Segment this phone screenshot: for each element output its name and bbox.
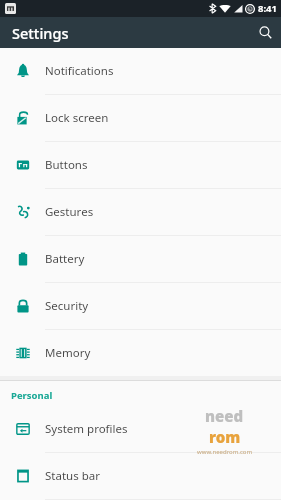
staticText: Lock screen	[45, 110, 109, 126]
staticText: Gestures	[45, 204, 94, 220]
staticText: www.needrom.com	[197, 448, 253, 456]
staticText: Settings	[12, 23, 69, 43]
staticText: Status bar	[45, 468, 100, 484]
staticText: Security	[45, 298, 89, 314]
staticText: Personal	[11, 389, 53, 402]
button[interactable]: Status bar	[0, 453, 281, 499]
button[interactable]: System profiles	[0, 406, 281, 452]
button[interactable]: Battery	[0, 236, 281, 282]
button[interactable]: Memory	[0, 330, 281, 376]
staticText: 8:41	[258, 2, 277, 15]
button[interactable]: Buttons	[0, 142, 281, 188]
button[interactable]: Security	[0, 283, 281, 329]
staticText: Battery	[45, 251, 85, 267]
button[interactable]: Gestures	[0, 189, 281, 235]
button[interactable]: Search	[250, 17, 281, 48]
staticText: Notifications	[45, 63, 114, 79]
staticText: need	[205, 406, 244, 426]
staticText: System profiles	[45, 421, 128, 437]
button[interactable]: Notifications	[0, 48, 281, 94]
button[interactable]: Lock screen	[0, 95, 281, 141]
staticText: Buttons	[45, 157, 88, 173]
staticText: Memory	[45, 345, 91, 361]
staticText: rom	[209, 427, 241, 447]
